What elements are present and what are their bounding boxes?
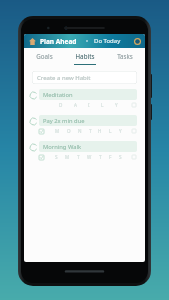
- staticText: Y: [119, 128, 122, 134]
- staticText: Meditation: [43, 91, 73, 99]
- button[interactable]: Goals: [24, 48, 65, 63]
- button[interactable]: Repeat: [24, 89, 145, 109]
- button[interactable]: Create a new Habit: [32, 71, 137, 84]
- staticText: T: [77, 154, 80, 160]
- other: Repeat: [28, 142, 38, 152]
- staticText: M: [55, 128, 60, 134]
- button[interactable]: Home: [27, 36, 38, 47]
- staticText: F: [109, 154, 112, 160]
- button[interactable]: Menu: [83, 37, 91, 45]
- staticText: Create a new Habit: [37, 74, 91, 82]
- staticText: H: [98, 128, 102, 134]
- staticText: N: [78, 128, 82, 134]
- staticText: Y: [115, 102, 118, 108]
- staticText: Goals: [36, 52, 53, 60]
- button[interactable]: Repeat: [24, 141, 145, 161]
- staticText: Do Today: [94, 37, 121, 45]
- staticText: Plan Ahead: [40, 37, 77, 46]
- button[interactable]: Tasks: [105, 48, 145, 63]
- staticText: A: [74, 102, 77, 108]
- other: Edit: [38, 128, 44, 134]
- button[interactable]: Habits: [65, 48, 105, 63]
- staticText: L: [101, 102, 104, 108]
- staticText: T: [89, 128, 92, 134]
- staticText: I: [88, 102, 90, 108]
- staticText: O: [67, 128, 71, 134]
- staticText: Pay 2x min due: [43, 117, 85, 125]
- other: Repeat: [28, 90, 38, 100]
- button[interactable]: Plan Ahead: [40, 37, 77, 46]
- staticText: W: [87, 154, 92, 160]
- other: Repeat: [28, 116, 38, 126]
- staticText: L: [109, 128, 112, 134]
- button[interactable]: Do Today: [94, 37, 121, 45]
- other: Edit: [38, 154, 44, 160]
- staticText: T: [99, 154, 102, 160]
- staticText: S: [55, 154, 58, 160]
- button[interactable]: Info: [132, 36, 142, 46]
- staticText: Habits: [75, 52, 95, 60]
- staticText: Morning Walk: [43, 143, 82, 151]
- staticText: S: [119, 154, 122, 160]
- staticText: Tasks: [117, 52, 133, 60]
- staticText: D: [59, 102, 63, 108]
- staticText: M: [65, 154, 70, 160]
- button[interactable]: Repeat: [24, 115, 145, 135]
